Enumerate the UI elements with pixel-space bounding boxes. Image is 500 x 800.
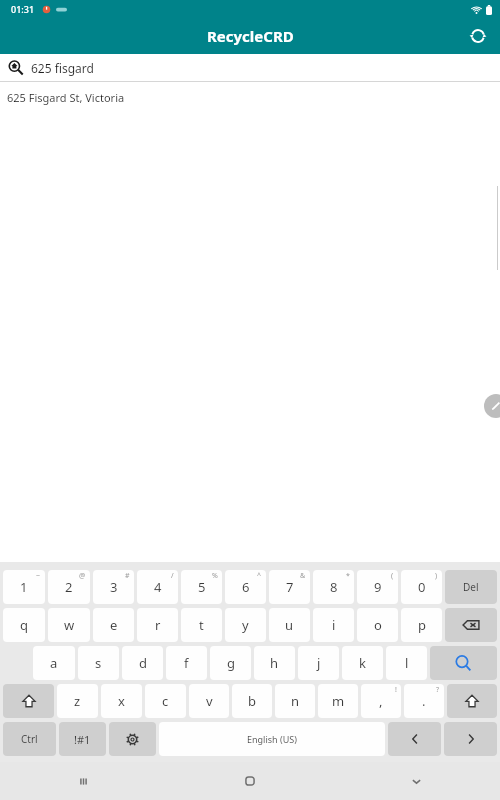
- staticText: Del: [463, 580, 479, 594]
- button[interactable]: x: [101, 684, 142, 718]
- button[interactable]: i: [313, 608, 354, 642]
- staticText: 5: [198, 578, 206, 596]
- button[interactable]: Search: [430, 646, 497, 680]
- button[interactable]: 1: [3, 570, 45, 604]
- staticText: %: [212, 571, 218, 581]
- staticText: i: [332, 616, 336, 634]
- button[interactable]: r: [137, 608, 178, 642]
- staticText: j: [317, 654, 321, 672]
- staticText: 0: [418, 578, 426, 596]
- staticText: p: [418, 616, 426, 634]
- staticText: (: [391, 571, 394, 581]
- button[interactable]: h: [254, 646, 295, 680]
- button[interactable]: j: [298, 646, 339, 680]
- staticText: k: [359, 654, 366, 672]
- staticText: RecycleCRD: [207, 26, 294, 46]
- button[interactable]: Shift: [3, 684, 54, 718]
- button[interactable]: u: [269, 608, 310, 642]
- button[interactable]: d: [122, 646, 163, 680]
- staticText: y: [242, 616, 249, 634]
- button[interactable]: Del: [445, 570, 497, 604]
- button[interactable]: b: [232, 684, 272, 718]
- button[interactable]: c: [145, 684, 186, 718]
- staticText: #: [125, 571, 130, 581]
- button[interactable]: 9: [357, 570, 398, 604]
- staticText: z: [74, 692, 81, 710]
- button[interactable]: t: [181, 608, 222, 642]
- staticText: d: [139, 654, 147, 672]
- staticText: 6: [242, 578, 250, 596]
- button[interactable]: Next: [444, 722, 497, 756]
- staticText: m: [332, 692, 345, 710]
- staticText: 01:31: [11, 3, 35, 15]
- button[interactable]: Backspace: [445, 608, 497, 642]
- staticText: 8: [330, 578, 338, 596]
- button[interactable]: .: [404, 684, 444, 718]
- button[interactable]: p: [401, 608, 442, 642]
- staticText: w: [64, 616, 75, 634]
- staticText: .: [422, 692, 426, 710]
- staticText: ^: [257, 571, 262, 581]
- staticText: ,: [379, 692, 383, 710]
- button[interactable]: Refresh: [463, 21, 493, 51]
- button[interactable]: Ctrl: [3, 722, 56, 756]
- button[interactable]: 0: [401, 570, 442, 604]
- button[interactable]: z: [57, 684, 98, 718]
- button[interactable]: e: [93, 608, 134, 642]
- staticText: g: [227, 654, 235, 672]
- staticText: 3: [110, 578, 118, 596]
- button[interactable]: w: [48, 608, 90, 642]
- staticText: 1: [20, 578, 28, 596]
- button[interactable]: g: [210, 646, 251, 680]
- button[interactable]: Edit: [484, 394, 500, 418]
- button[interactable]: English (US): [159, 722, 385, 756]
- button[interactable]: 4: [137, 570, 178, 604]
- button[interactable]: o: [357, 608, 398, 642]
- button[interactable]: 2: [48, 570, 90, 604]
- staticText: o: [374, 616, 382, 634]
- button[interactable]: Keyboard settings: [109, 722, 156, 756]
- button[interactable]: 625 fisgard: [0, 54, 500, 82]
- button[interactable]: k: [342, 646, 383, 680]
- staticText: 4: [154, 578, 162, 596]
- button[interactable]: m: [318, 684, 358, 718]
- staticText: English (US): [247, 733, 297, 745]
- button[interactable]: Recents: [0, 762, 166, 800]
- button[interactable]: ,: [361, 684, 401, 718]
- button[interactable]: Previous: [388, 722, 441, 756]
- staticText: *: [346, 571, 350, 581]
- staticText: 2: [65, 578, 73, 596]
- staticText: h: [270, 654, 279, 672]
- staticText: @: [79, 571, 86, 581]
- staticText: x: [118, 692, 125, 710]
- button[interactable]: s: [78, 646, 119, 680]
- button[interactable]: 6: [225, 570, 266, 604]
- staticText: b: [248, 692, 256, 710]
- staticText: ): [435, 571, 438, 581]
- staticText: u: [285, 616, 294, 634]
- button[interactable]: 3: [93, 570, 134, 604]
- staticText: e: [110, 616, 118, 634]
- staticText: n: [291, 692, 300, 710]
- button[interactable]: l: [386, 646, 427, 680]
- button[interactable]: v: [189, 684, 229, 718]
- button[interactable]: q: [3, 608, 45, 642]
- staticText: ~: [36, 571, 41, 581]
- staticText: 9: [374, 578, 382, 596]
- button[interactable]: !#1: [59, 722, 106, 756]
- staticText: v: [206, 692, 213, 710]
- button[interactable]: Home: [166, 762, 333, 800]
- button[interactable]: n: [275, 684, 315, 718]
- button[interactable]: 625 Fisgard St, Victoria: [7, 90, 125, 105]
- button[interactable]: y: [225, 608, 266, 642]
- staticText: q: [20, 616, 28, 634]
- button[interactable]: 8: [313, 570, 354, 604]
- button[interactable]: a: [33, 646, 75, 680]
- button[interactable]: Hide keyboard: [333, 762, 500, 800]
- button[interactable]: 7: [269, 570, 310, 604]
- button[interactable]: 5: [181, 570, 222, 604]
- staticText: a: [50, 654, 58, 672]
- button[interactable]: f: [166, 646, 207, 680]
- staticText: s: [95, 654, 102, 672]
- button[interactable]: Shift: [447, 684, 497, 718]
